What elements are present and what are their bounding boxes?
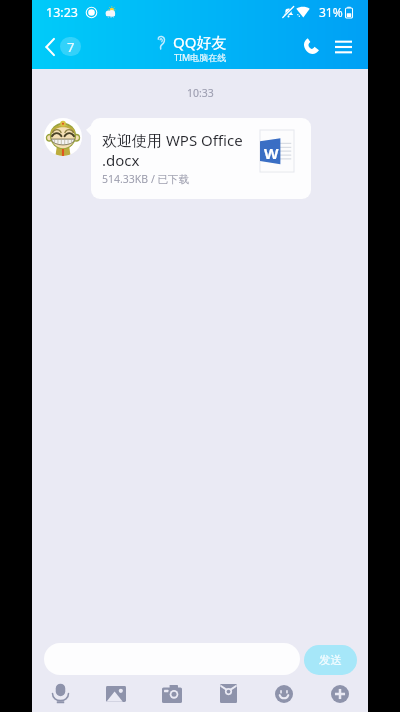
staticText: .docx xyxy=(102,150,140,170)
staticText: 7 xyxy=(67,38,75,56)
button[interactable]: Camera xyxy=(144,675,200,712)
button[interactable]: 发送 xyxy=(304,645,357,675)
staticText: 10:33 xyxy=(187,86,214,100)
button[interactable]: Back xyxy=(32,24,87,69)
staticText: W xyxy=(264,143,279,163)
staticText: QQ好友 xyxy=(173,32,227,52)
staticText: 13:23 xyxy=(46,4,78,21)
staticText: 欢迎使用 WPS Office xyxy=(102,130,243,150)
button[interactable]: Avatar xyxy=(44,118,82,156)
button[interactable]: Red packet xyxy=(200,675,256,712)
button[interactable]: More xyxy=(312,675,368,712)
button[interactable]: Voice message xyxy=(32,675,88,712)
staticText: 发送 xyxy=(319,653,342,667)
staticText: TIM电脑在线 xyxy=(174,51,227,63)
button[interactable]: Gallery xyxy=(88,675,144,712)
staticText: 31% xyxy=(319,4,343,20)
button[interactable]: Menu xyxy=(324,24,362,69)
button[interactable]: 欢迎使用 WPS Office xyxy=(91,118,311,199)
staticText: 514.33KB / 已下载 xyxy=(102,172,190,186)
button[interactable]: Call xyxy=(282,24,324,69)
button[interactable]: Emoji xyxy=(256,675,312,712)
